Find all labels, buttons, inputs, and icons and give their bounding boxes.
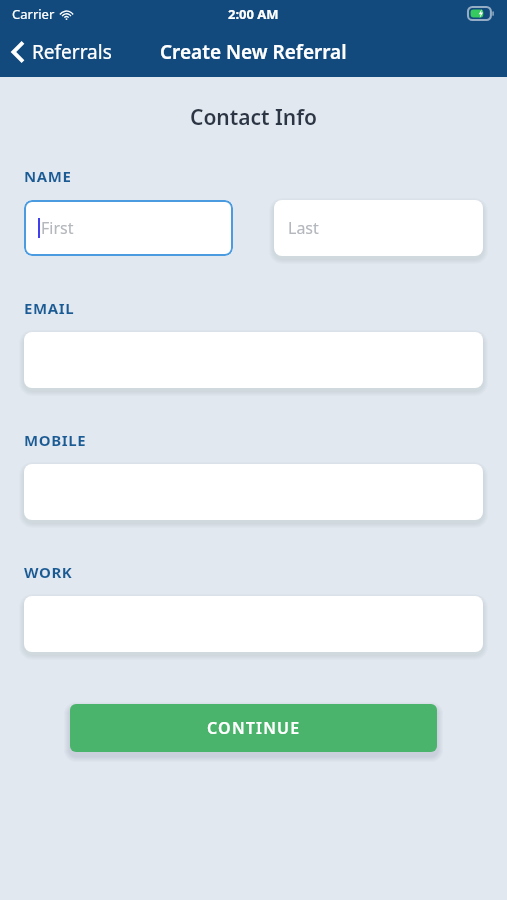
button[interactable]: Last [274, 200, 483, 256]
staticText: NAME [24, 166, 72, 186]
staticText: MOBILE [24, 430, 87, 450]
staticText: Create New Referral [160, 39, 347, 65]
button[interactable]: Referrals [0, 27, 120, 77]
staticText: Last [288, 217, 319, 239]
staticText: WORK [24, 562, 73, 582]
staticText: Carrier [12, 5, 55, 23]
staticText: CONTINUE [207, 717, 301, 739]
button[interactable]: CONTINUE [70, 704, 437, 752]
staticText: 2:00 AM [228, 5, 279, 23]
staticText: EMAIL [24, 298, 75, 318]
button[interactable]: First [24, 200, 233, 256]
staticText: Contact Info [190, 103, 318, 132]
staticText: First [41, 217, 74, 239]
staticText: Referrals [32, 39, 112, 65]
